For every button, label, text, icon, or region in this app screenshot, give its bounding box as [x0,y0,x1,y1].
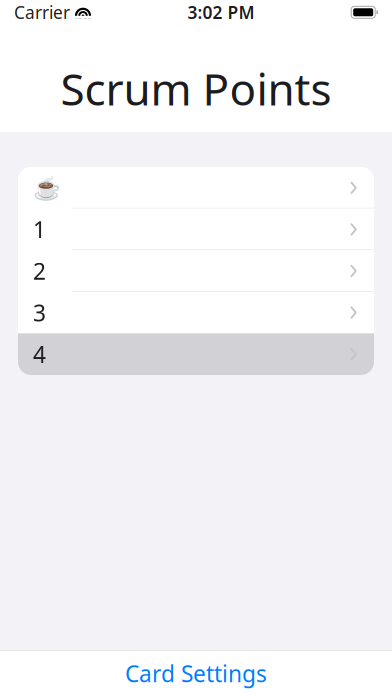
staticText: 1 [33,214,46,244]
button[interactable]: ☕️ [18,167,374,209]
staticText: 4 [33,339,46,369]
staticText: 3:02 PM [188,1,255,24]
button[interactable]: 1 [18,209,374,250]
staticText: ☕️ [33,175,61,201]
button[interactable]: 2 [18,250,374,292]
button[interactable]: 4 [18,333,374,375]
staticText: 2 [33,256,46,286]
staticText: 3 [33,297,46,328]
staticText: Scrum Points [60,59,331,118]
staticText: Card Settings [125,658,267,688]
button[interactable]: Card Settings [109,648,283,696]
staticText: Carrier [14,1,70,24]
button[interactable]: 3 [18,292,374,333]
